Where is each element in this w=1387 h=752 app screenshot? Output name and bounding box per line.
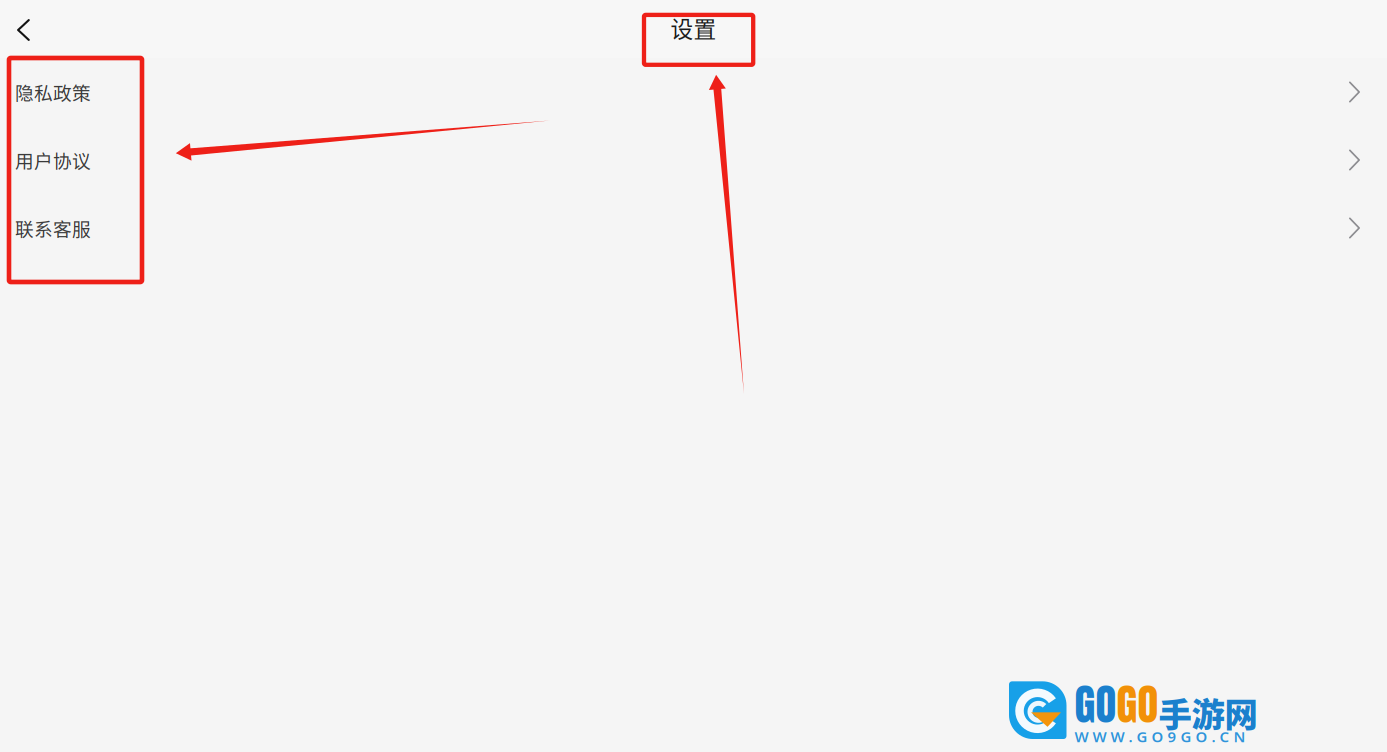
staticText: 联系客服 bbox=[15, 214, 91, 241]
staticText: GO bbox=[1074, 672, 1116, 736]
staticText: 手游网 bbox=[1158, 688, 1257, 736]
button[interactable]: Back bbox=[0, 0, 58, 58]
button[interactable]: 联系客服 bbox=[0, 194, 1387, 262]
staticText: 用户协议 bbox=[15, 146, 91, 173]
staticText: W W W . G O 9 G O . C N bbox=[1074, 726, 1245, 747]
button[interactable]: 用户协议 bbox=[0, 126, 1387, 194]
button[interactable]: 隐私政策 bbox=[0, 58, 1387, 126]
staticText: GO bbox=[1116, 672, 1158, 736]
staticText: 设置 bbox=[670, 11, 716, 44]
staticText: 隐私政策 bbox=[15, 78, 91, 105]
